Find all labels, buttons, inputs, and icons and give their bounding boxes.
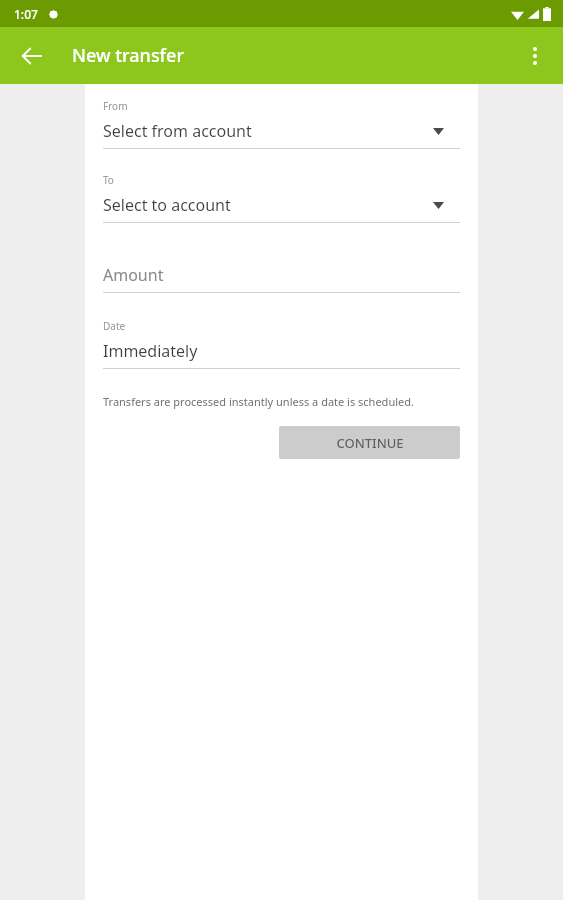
staticText: CONTINUE bbox=[336, 434, 404, 452]
button[interactable]: From bbox=[103, 99, 460, 149]
button[interactable]: Amount bbox=[103, 264, 460, 293]
staticText: Amount bbox=[103, 264, 164, 286]
staticText: Transfers are processed instantly unless… bbox=[103, 394, 414, 409]
staticText: Select from account bbox=[103, 120, 252, 142]
button[interactable]: Date bbox=[103, 319, 460, 369]
staticText: To bbox=[103, 173, 114, 187]
staticText: Select to account bbox=[103, 194, 231, 216]
staticText: 1:07 bbox=[14, 6, 38, 22]
button[interactable]: More options bbox=[511, 32, 559, 80]
staticText: New transfer bbox=[72, 43, 184, 68]
staticText: Date bbox=[103, 319, 126, 333]
staticText: From bbox=[103, 99, 128, 113]
button[interactable]: To bbox=[103, 173, 460, 223]
staticText: Immediately bbox=[103, 340, 198, 362]
button[interactable]: CONTINUE bbox=[279, 426, 460, 459]
button[interactable]: Back bbox=[8, 32, 56, 80]
